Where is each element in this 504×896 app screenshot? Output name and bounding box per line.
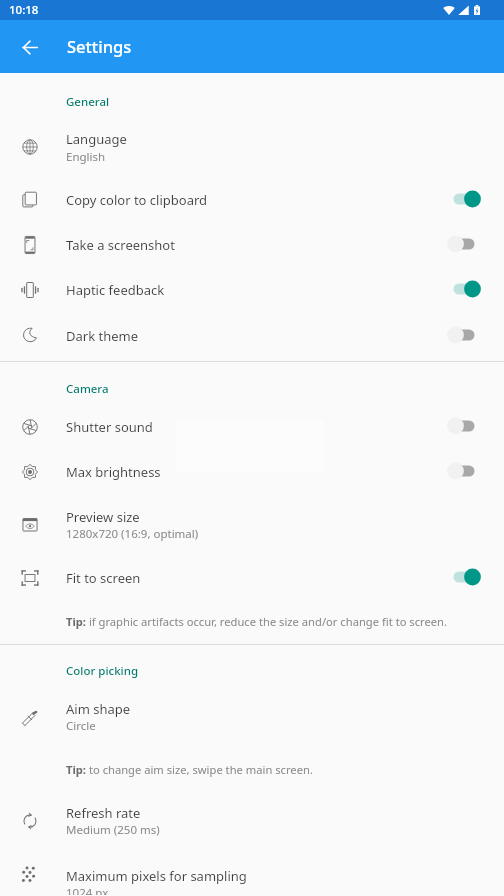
- staticText: Dark theme: [66, 327, 139, 345]
- staticText: Shutter sound: [66, 418, 153, 436]
- staticText: Tip: if graphic artifacts occur, reduce …: [66, 614, 448, 629]
- button[interactable]: Copy color to clipboard: [0, 176, 504, 221]
- staticText: Language: [66, 130, 127, 148]
- staticText: 1280x720 (16:9, optimal): [66, 526, 199, 542]
- staticText: Medium (250 ms): [66, 822, 160, 838]
- staticText: Fit to screen: [66, 569, 141, 587]
- staticText: Settings: [67, 35, 132, 57]
- button[interactable]: Shutter sound: [0, 403, 504, 448]
- button[interactable]: Take a screenshot: [0, 221, 504, 266]
- staticText: Circle: [66, 718, 96, 734]
- staticText: Haptic feedback: [66, 281, 165, 299]
- staticText: Take a screenshot: [66, 236, 175, 254]
- button[interactable]: Language: [0, 116, 504, 176]
- staticText: Copy color to clipboard: [66, 191, 208, 209]
- button[interactable]: Aim shape: [0, 686, 504, 747]
- staticText: Tip: to change aim size, swipe the main …: [66, 762, 313, 777]
- staticText: English: [66, 149, 106, 165]
- button[interactable]: Dark theme: [0, 312, 504, 357]
- staticText: Maximum pixels for sampling: [66, 867, 247, 885]
- staticText: Max brightness: [66, 463, 161, 481]
- staticText: General: [66, 94, 110, 110]
- staticText: Color picking: [66, 663, 139, 679]
- button[interactable]: Fit to screen: [0, 554, 504, 599]
- button[interactable]: Refresh rate: [0, 789, 504, 850]
- staticText: Preview size: [66, 508, 140, 526]
- staticText: Camera: [66, 381, 109, 397]
- button[interactable]: Preview size: [0, 493, 504, 554]
- button[interactable]: Maximum pixels for sampling: [0, 850, 504, 895]
- staticText: Aim shape: [66, 700, 131, 718]
- button[interactable]: Back: [12, 29, 48, 65]
- staticText: Refresh rate: [66, 804, 141, 822]
- button[interactable]: Haptic feedback: [0, 266, 504, 312]
- button[interactable]: Max brightness: [0, 448, 504, 493]
- staticText: 10:18: [9, 2, 39, 18]
- staticText: 1024 px: [66, 885, 109, 895]
